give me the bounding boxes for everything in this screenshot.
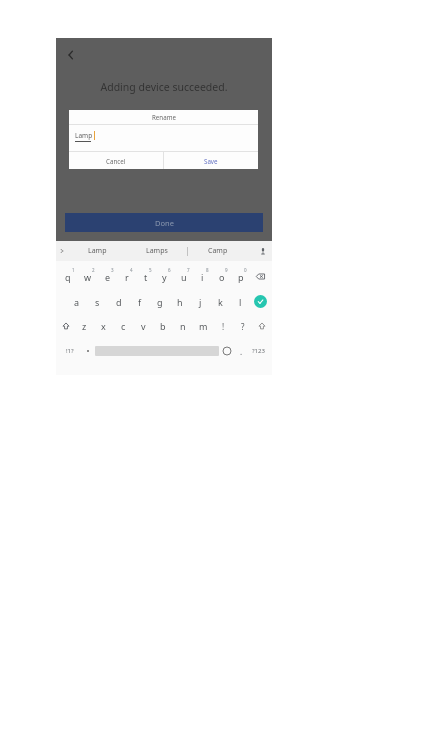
button[interactable]: Back	[60, 44, 82, 66]
staticText: b	[160, 320, 166, 332]
button[interactable]: h	[170, 289, 190, 314]
staticText: 3	[111, 267, 114, 273]
button[interactable]: s	[87, 289, 108, 314]
staticText: 2	[92, 267, 95, 273]
button[interactable]: Cancel	[69, 152, 163, 169]
staticText: e	[105, 271, 111, 283]
staticText: Lamp	[88, 246, 107, 256]
button[interactable]: Voice input	[254, 241, 272, 261]
staticText: !1?	[66, 347, 74, 355]
button[interactable]: .	[235, 338, 247, 364]
button[interactable]: o	[212, 264, 231, 289]
button[interactable]: k	[210, 289, 230, 314]
button[interactable]: m	[193, 314, 213, 338]
button[interactable]: Settings	[81, 338, 95, 364]
button[interactable]: e	[98, 264, 117, 289]
button[interactable]: Shift	[57, 314, 75, 338]
button[interactable]: t	[136, 264, 155, 289]
staticText: f	[138, 296, 142, 308]
button[interactable]: r	[117, 264, 136, 289]
button[interactable]: y	[155, 264, 174, 289]
staticText: Cancel	[106, 157, 126, 165]
staticText: ?123	[252, 347, 265, 355]
button[interactable]: Emoji keyboard	[219, 338, 235, 364]
staticText: Done	[155, 218, 174, 228]
button[interactable]: Lamp	[68, 241, 127, 261]
button[interactable]: c	[113, 314, 133, 338]
staticText: Rename	[152, 113, 176, 121]
button[interactable]: !	[213, 314, 233, 338]
button[interactable]: Lamps	[127, 241, 187, 261]
button[interactable]: x	[94, 314, 113, 338]
button[interactable]: z	[75, 314, 94, 338]
staticText: Adding device succeeded.	[56, 80, 272, 94]
staticText: 0	[244, 267, 247, 273]
staticText: l	[239, 296, 242, 308]
staticText: q	[65, 271, 71, 283]
staticText: Camp	[208, 246, 228, 256]
button[interactable]: v	[133, 314, 153, 338]
staticText: Lamp	[75, 131, 93, 140]
staticText: i	[201, 271, 204, 283]
staticText: v	[141, 320, 146, 332]
staticText: 1	[72, 267, 75, 273]
staticText: s	[95, 296, 100, 308]
button[interactable]: u	[174, 264, 193, 289]
button[interactable]: b	[153, 314, 173, 338]
button[interactable]: Save	[164, 152, 258, 169]
staticText: y	[162, 271, 167, 283]
button[interactable]: Enter	[250, 289, 270, 314]
staticText: 6	[168, 267, 171, 273]
staticText: x	[101, 320, 106, 332]
staticText: 5	[149, 267, 152, 273]
staticText: p	[238, 271, 244, 283]
button[interactable]: Backspace	[250, 264, 270, 289]
staticText: 4	[130, 267, 133, 273]
staticText: ?	[241, 321, 245, 332]
button[interactable]: p	[231, 264, 250, 289]
button[interactable]: ?123	[247, 338, 269, 364]
button[interactable]: Camp	[188, 241, 248, 261]
staticText: Lamps	[146, 246, 168, 256]
staticText: Save	[204, 157, 218, 165]
staticText: r	[125, 271, 129, 283]
button[interactable]: j	[190, 289, 210, 314]
button[interactable]: a	[66, 289, 87, 314]
staticText: n	[180, 320, 186, 332]
button[interactable]: ?	[233, 314, 253, 338]
button[interactable]: Done	[65, 213, 263, 232]
staticText: m	[199, 320, 208, 332]
staticText: d	[116, 296, 122, 308]
staticText: a	[74, 296, 80, 308]
button[interactable]: w	[78, 264, 98, 289]
button[interactable]: q	[58, 264, 78, 289]
staticText: c	[121, 320, 126, 332]
staticText: .	[240, 346, 243, 357]
staticText: 9	[225, 267, 228, 273]
staticText: w	[84, 271, 92, 283]
button[interactable]: d	[108, 289, 129, 314]
button[interactable]: More suggestions	[57, 241, 67, 261]
staticText: o	[219, 271, 225, 283]
staticText: !	[222, 321, 225, 332]
button[interactable]: !1?	[59, 338, 81, 364]
staticText: h	[177, 296, 183, 308]
staticText: 8	[206, 267, 209, 273]
button[interactable]: Emoji	[253, 314, 271, 338]
staticText: g	[157, 296, 163, 308]
staticText: z	[82, 320, 87, 332]
button[interactable]: n	[173, 314, 193, 338]
button[interactable]: l	[230, 289, 250, 314]
button[interactable]: f	[129, 289, 150, 314]
staticText: 7	[187, 267, 190, 273]
staticText: t	[144, 271, 148, 283]
staticText: k	[218, 296, 223, 308]
staticText: j	[199, 296, 202, 308]
button[interactable]: i	[193, 264, 212, 289]
staticText: u	[181, 271, 187, 283]
button[interactable]: g	[150, 289, 170, 314]
